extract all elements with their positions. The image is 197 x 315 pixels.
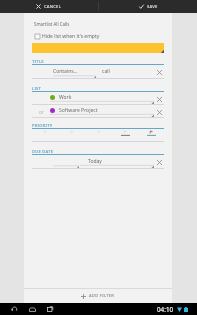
button[interactable]: Today: [32, 155, 164, 169]
button[interactable]: CANCEL: [0, 0, 98, 13]
button[interactable]: Home: [26, 303, 38, 315]
button[interactable]: Contains...: [53, 65, 96, 79]
staticText: LIST: [32, 86, 42, 92]
button[interactable]: Remove filter: [154, 94, 164, 104]
button[interactable]: Priority: [112, 129, 138, 142]
button[interactable]: [53, 155, 79, 169]
staticText: Hide list when it's empty: [42, 33, 100, 40]
button[interactable]: ADD FILTER: [24, 289, 172, 303]
staticText: Contains...: [53, 68, 78, 75]
staticText: TITLE: [32, 59, 44, 65]
button[interactable]: [32, 43, 164, 53]
button[interactable]: Remove filter: [154, 107, 164, 117]
staticText: DUE DATE: [32, 149, 54, 155]
button[interactable]: Priority: [138, 129, 164, 142]
button[interactable]: Remove filter: [154, 157, 164, 167]
button[interactable]: Contains...: [32, 65, 164, 79]
button[interactable]: Remove filter: [154, 67, 164, 77]
staticText: Software Project: [59, 107, 98, 114]
button[interactable]: Software Project: [50, 105, 154, 118]
staticText: Today: [88, 158, 102, 165]
button[interactable]: Back: [8, 303, 20, 315]
staticText: PRIORITY: [32, 123, 53, 129]
button[interactable]: Work: [50, 92, 154, 105]
button[interactable]: Priority: [86, 129, 112, 142]
button[interactable]: Recent apps: [44, 303, 56, 315]
button[interactable]: Priority: [32, 129, 59, 142]
staticText: or: [39, 109, 44, 115]
staticText: CANCEL: [44, 4, 62, 10]
button[interactable]: SAVE: [99, 0, 197, 13]
button[interactable]: Priority: [59, 129, 86, 142]
button[interactable]: Work: [32, 92, 164, 105]
staticText: ADD FILTER: [89, 293, 115, 299]
staticText: 04:10: [157, 305, 174, 314]
button[interactable]: or: [32, 105, 164, 118]
button[interactable]: Today: [80, 155, 154, 169]
staticText: call: [102, 68, 110, 75]
staticText: SAVE: [147, 4, 158, 10]
staticText: Work: [59, 94, 72, 101]
button[interactable]: Hide list when it's empty: [35, 32, 172, 40]
staticText: Smartlist All Calls: [34, 21, 70, 27]
